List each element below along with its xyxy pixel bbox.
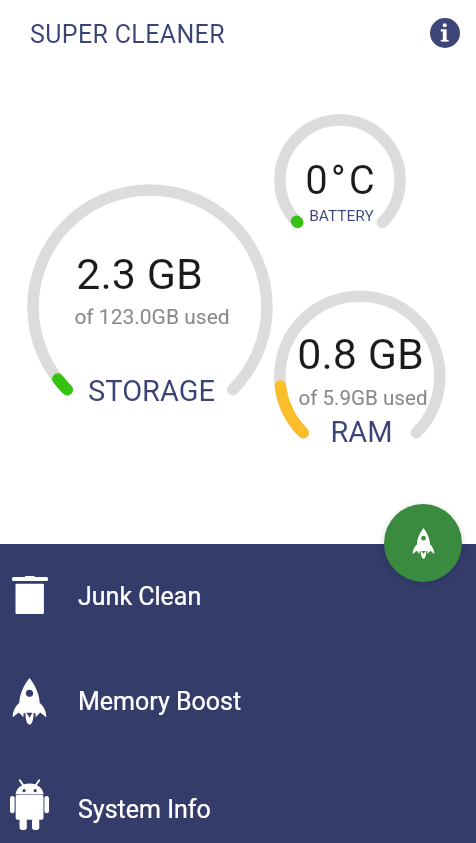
button[interactable]: Junk Clean <box>0 544 476 649</box>
button[interactable]: SUPER CLEANER <box>30 20 225 49</box>
staticText: BATTERY <box>309 207 374 225</box>
staticText: SUPER CLEANER <box>30 20 225 49</box>
button[interactable]: Memory Boost <box>0 649 476 754</box>
staticText: Memory Boost <box>78 687 242 716</box>
staticText: Junk Clean <box>78 582 202 611</box>
staticText: 2.3 GB <box>76 249 203 299</box>
button[interactable]: Boost <box>384 504 462 582</box>
button[interactable]: Info <box>414 2 475 63</box>
staticText: 0.8 GB <box>297 329 424 379</box>
staticText: 0°C <box>305 157 378 204</box>
staticText: System Info <box>78 795 211 824</box>
staticText: STORAGE <box>88 374 215 408</box>
button[interactable]: System Info <box>0 757 476 843</box>
staticText: RAM <box>330 415 393 449</box>
staticText: of 5.9GB used <box>298 386 428 410</box>
staticText: of 123.0GB used <box>74 305 230 330</box>
